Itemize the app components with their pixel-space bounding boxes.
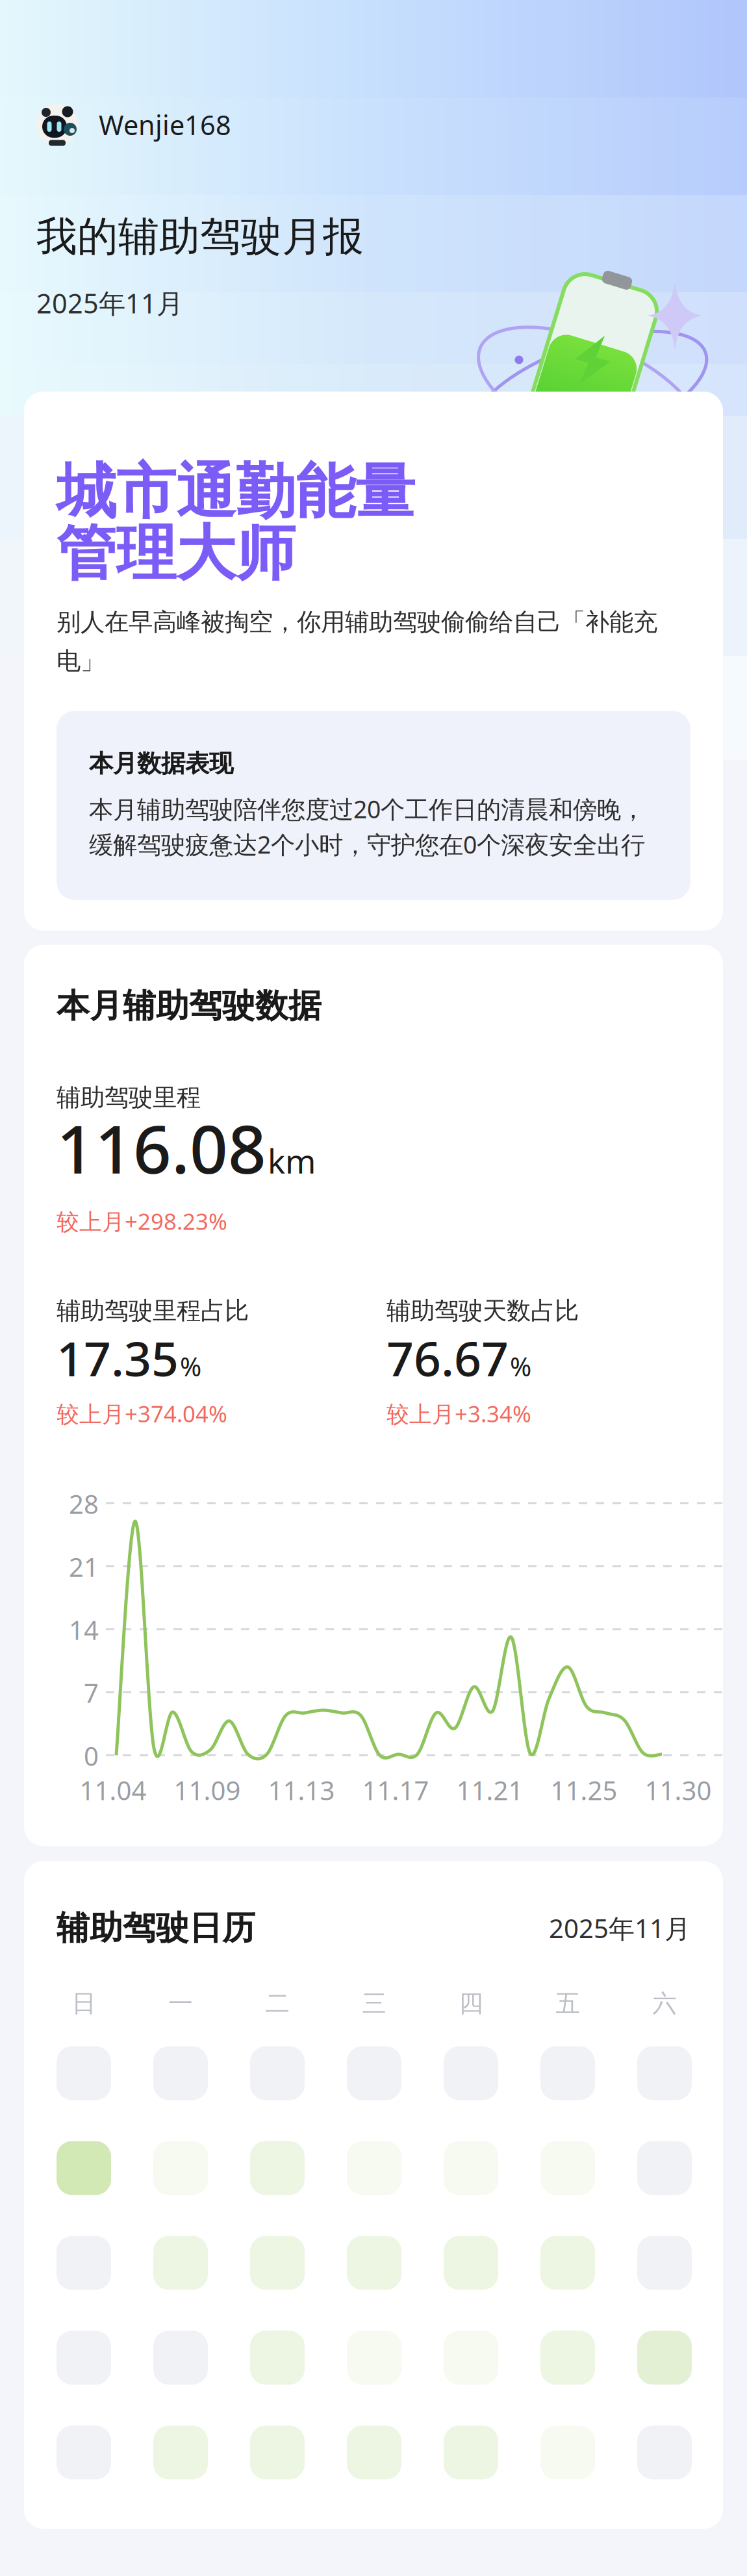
staticText: 辅助驾驶天数占比 [386, 1296, 579, 1326]
staticText: 7 [84, 1676, 99, 1710]
staticText: 较上月+298.23% [57, 1206, 227, 1236]
staticText: 本月数据表现 [89, 749, 233, 778]
staticText: 21 [69, 1550, 99, 1584]
staticText: 辅助驾驶日历 [57, 1908, 255, 1948]
staticText: 较上月+3.34% [386, 1399, 531, 1428]
staticText: 我的辅助驾驶月报 [36, 212, 364, 262]
staticText: 城市通勤能量 管理大师 [57, 455, 415, 590]
staticText: % [510, 1349, 531, 1384]
staticText: 11.04 [80, 1773, 146, 1807]
staticText: 2025年11月 [36, 285, 183, 321]
staticText: 一 [169, 1989, 193, 2018]
staticText: 116.08 [57, 1103, 266, 1192]
staticText: 辅助驾驶里程 [57, 1083, 201, 1112]
staticText: 11.13 [268, 1773, 335, 1807]
staticText: 76.67 [386, 1326, 509, 1390]
staticText: 六 [652, 1989, 677, 2018]
staticText: 辅助驾驶里程占比 [57, 1296, 249, 1326]
button[interactable]: Wenjie168 [36, 104, 231, 145]
staticText: km [268, 1139, 316, 1183]
staticText: 二 [265, 1989, 289, 2018]
staticText: 四 [459, 1989, 483, 2018]
staticText: 本月辅助驾驶数据 [57, 986, 322, 1026]
staticText: Wenjie168 [99, 107, 231, 143]
staticText: 14 [69, 1613, 99, 1647]
staticText: 17.35 [57, 1326, 179, 1390]
staticText: % [180, 1349, 201, 1384]
staticText: 本月辅助驾驶陪伴您度过20个工作日的清晨和傍晚，缓解驾驶疲惫达2个小时，守护您在… [89, 793, 645, 860]
staticText: 11.25 [551, 1773, 617, 1807]
staticText: 11.21 [456, 1773, 523, 1807]
staticText: 2025年11月 [549, 1911, 690, 1945]
staticText: 较上月+374.04% [57, 1399, 227, 1428]
staticText: 11.30 [645, 1773, 712, 1807]
staticText: 别人在早高峰被掏空，你用辅助驾驶偷偷给自己「补能充电」 [57, 607, 657, 676]
staticText: 日 [72, 1989, 96, 2018]
staticText: 11.17 [362, 1773, 429, 1807]
staticText: 0 [84, 1739, 99, 1773]
staticText: 11.09 [174, 1773, 241, 1807]
staticText: 五 [556, 1989, 580, 2018]
staticText: 三 [362, 1989, 386, 2018]
staticText: 28 [69, 1487, 99, 1521]
